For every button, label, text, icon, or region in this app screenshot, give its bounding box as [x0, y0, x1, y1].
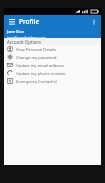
button[interactable]: Jane Doe	[4, 27, 101, 38]
button[interactable]: Open navigation menu	[7, 17, 16, 26]
staticText: Emergency Contact(s)	[16, 79, 57, 84]
staticText: Account Options	[7, 39, 42, 45]
staticText: Update my phone number	[16, 71, 66, 76]
staticText: jane@emailaddress.com	[7, 35, 46, 38]
staticText: Update my email address	[16, 63, 64, 68]
staticText: Profile	[19, 17, 40, 26]
staticText: View Personal Details	[16, 47, 57, 52]
button[interactable]: Emergency Contact(s)	[4, 77, 101, 85]
staticText: Change my password	[16, 55, 57, 60]
staticText: Jane Doe	[7, 29, 24, 34]
button[interactable]: Update my phone number	[4, 69, 101, 77]
button[interactable]: Change my password	[4, 53, 101, 61]
button[interactable]: Update my email address	[4, 61, 101, 69]
button[interactable]: View Personal Details	[4, 45, 101, 53]
button[interactable]: More options	[89, 17, 98, 26]
